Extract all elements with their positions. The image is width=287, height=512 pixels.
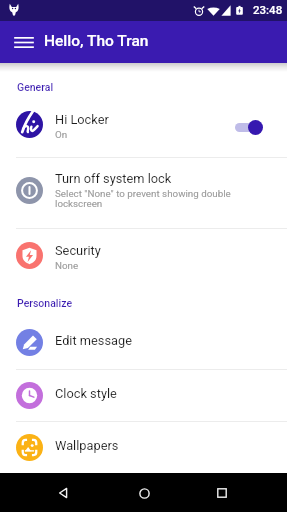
staticText: Clock style [55,386,117,401]
button[interactable]: Recent apps [204,475,240,511]
staticText: 23:48 [253,3,283,16]
staticText: None [55,260,79,271]
staticText: On [55,129,68,140]
staticText: Hi Locker [55,112,109,127]
button[interactable]: Wallpapers [0,422,287,473]
button[interactable]: Edit message [0,316,287,369]
button[interactable]: Security [0,229,287,281]
staticText: General [17,81,54,93]
staticText: Wallpapers [55,438,119,453]
button[interactable]: Toggle Hi Locker [234,116,271,138]
button[interactable]: Turn off system lock [0,158,287,228]
button[interactable]: Home [126,475,162,511]
staticText: Personalize [17,297,73,309]
staticText: Hello, Tho Tran [44,32,149,50]
button[interactable]: Open navigation menu [9,27,39,57]
button[interactable]: Clock style [0,370,287,421]
staticText: Turn off system lock [55,171,172,186]
button[interactable]: Back [45,475,81,511]
staticText: Edit message [55,333,132,348]
staticText: Select "None" to prevent showing double … [55,188,271,210]
button[interactable]: Hi Locker [0,94,287,157]
staticText: Security [55,243,101,258]
